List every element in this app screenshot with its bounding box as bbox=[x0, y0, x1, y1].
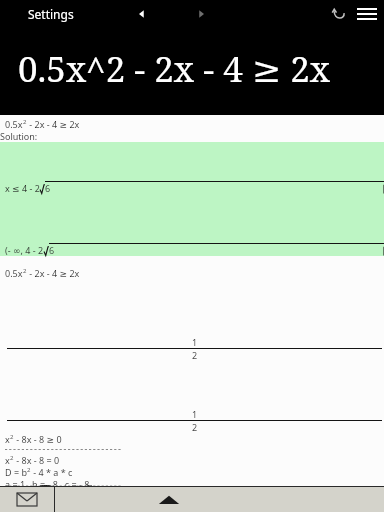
staticText: - 4 * a * c bbox=[31, 466, 73, 478]
button[interactable]: Menu bbox=[352, 0, 382, 28]
staticText: x bbox=[5, 433, 10, 445]
staticText: 2 bbox=[10, 433, 14, 441]
button[interactable]: Previous bbox=[130, 3, 152, 25]
staticText: 0.5x bbox=[5, 118, 23, 130]
staticText: - 2x - 4 ≥ 2x bbox=[27, 267, 80, 279]
staticText: 2 bbox=[23, 118, 27, 126]
staticText: a = 1 b = - 8 c = - 8 bbox=[5, 478, 90, 486]
staticText: 2 bbox=[10, 454, 14, 462]
staticText: - 8x - 8 = 0 bbox=[14, 454, 60, 466]
button[interactable]: Next bbox=[190, 3, 212, 25]
staticText: 1 bbox=[192, 408, 198, 420]
staticText: 1 bbox=[192, 336, 198, 348]
staticText: - 2x - 4 ≥ 2x bbox=[27, 118, 80, 130]
button[interactable]: Scroll up bbox=[55, 487, 384, 512]
staticText: 2 bbox=[192, 349, 198, 361]
staticText: Solution: bbox=[0, 130, 38, 142]
button[interactable]: Settings bbox=[28, 6, 74, 22]
staticText: 2 bbox=[192, 421, 198, 433]
staticText: (- ∞, 4 - 2 bbox=[5, 244, 44, 256]
staticText: x bbox=[5, 454, 10, 466]
staticText: Settings bbox=[28, 6, 74, 22]
staticText: x ≤ 4 - 2 bbox=[5, 182, 40, 194]
staticText: D = b bbox=[5, 466, 27, 478]
staticText: 6 bbox=[49, 244, 55, 256]
staticText: 2 bbox=[23, 267, 27, 275]
staticText: 0.5x^2 - 2x - 4 ≥ 2x bbox=[18, 45, 331, 93]
staticText: 2 bbox=[27, 466, 31, 474]
button[interactable]: Mail bbox=[0, 487, 54, 512]
staticText: 0.5x bbox=[5, 267, 23, 279]
staticText: 6 bbox=[45, 182, 51, 194]
button[interactable]: Undo bbox=[326, 1, 352, 27]
staticText: - 8x - 8 ≥ 0 bbox=[14, 433, 62, 445]
